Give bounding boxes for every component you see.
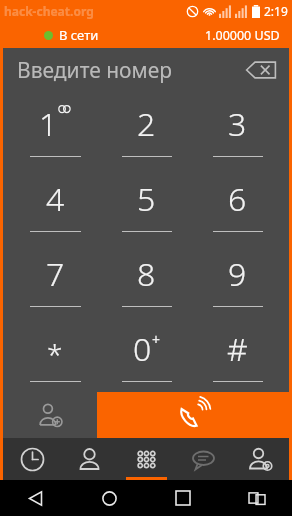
button[interactable]: 2 bbox=[101, 92, 192, 167]
button[interactable]: # bbox=[192, 317, 283, 392]
staticText: 1.00000 USD bbox=[205, 27, 280, 44]
button[interactable]: 5 bbox=[101, 167, 192, 242]
staticText: 5 bbox=[137, 177, 156, 221]
button[interactable]: Switch app bbox=[242, 483, 272, 513]
button[interactable]: 1 bbox=[9, 92, 101, 167]
button[interactable]: 0 bbox=[101, 317, 192, 392]
button[interactable]: 6 bbox=[192, 167, 283, 242]
button[interactable]: Backspace bbox=[243, 55, 279, 85]
button[interactable]: Recent calls bbox=[3, 438, 61, 480]
button[interactable]: * bbox=[9, 317, 101, 392]
button[interactable]: Call bbox=[97, 392, 289, 438]
button[interactable]: 3 bbox=[192, 92, 283, 167]
staticText: 6 bbox=[228, 177, 247, 221]
button[interactable]: 4 bbox=[9, 167, 101, 242]
staticText: 8 bbox=[137, 252, 156, 296]
staticText: 0 bbox=[133, 327, 152, 371]
staticText: 7 bbox=[46, 252, 65, 296]
button[interactable]: Back bbox=[20, 483, 50, 513]
staticText: 3 bbox=[228, 102, 247, 146]
staticText: hack-cheat.org bbox=[4, 3, 94, 19]
button[interactable]: 9 bbox=[192, 242, 283, 317]
button[interactable]: 7 bbox=[9, 242, 101, 317]
staticText: В сети bbox=[59, 26, 99, 44]
staticText: # bbox=[227, 327, 248, 371]
button[interactable]: Contacts bbox=[61, 438, 118, 480]
staticText: 2:19 bbox=[264, 3, 288, 19]
staticText: * bbox=[47, 335, 63, 373]
staticText: 1 bbox=[39, 102, 58, 146]
button[interactable]: Add contact bbox=[3, 392, 97, 438]
staticText: 2 bbox=[137, 102, 156, 146]
button[interactable]: 8 bbox=[101, 242, 192, 317]
button[interactable]: Dialpad bbox=[118, 438, 175, 480]
staticText: 9 bbox=[228, 252, 247, 296]
staticText: 4 bbox=[46, 177, 65, 221]
button[interactable]: Messages bbox=[175, 438, 232, 480]
staticText: + bbox=[152, 330, 161, 349]
button[interactable]: Recents bbox=[168, 483, 198, 513]
button[interactable]: Account bbox=[232, 438, 289, 480]
staticText: Введите номер bbox=[17, 56, 243, 85]
button[interactable]: Home bbox=[94, 483, 124, 513]
